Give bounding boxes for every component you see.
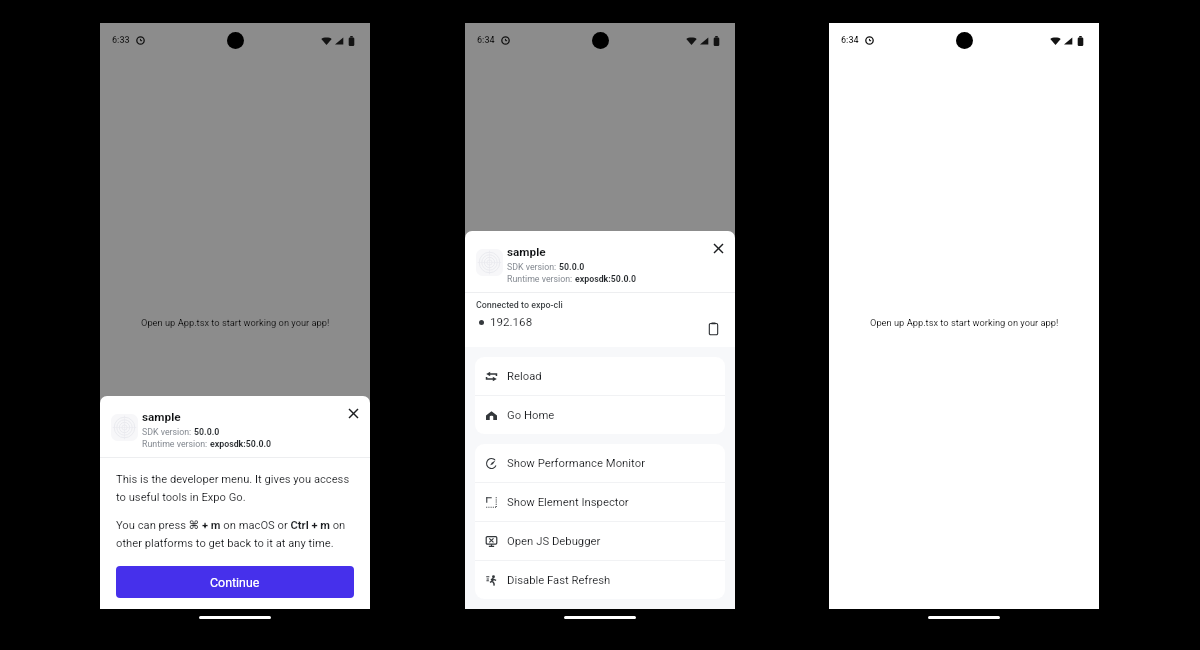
staticText: Show Performance Monitor bbox=[507, 457, 645, 470]
staticText: Runtime version: bbox=[507, 274, 575, 284]
staticText: Open up App.tsx to start working on your… bbox=[870, 317, 1059, 328]
button[interactable]: Disable Fast Refresh bbox=[475, 561, 725, 599]
staticText: sample bbox=[142, 410, 181, 424]
staticText: 192.168 bbox=[490, 315, 533, 329]
button[interactable]: Show Element Inspector bbox=[475, 483, 725, 521]
staticText: Runtime version: bbox=[142, 439, 210, 449]
staticText: 6:34 bbox=[841, 35, 859, 46]
button[interactable]: Continue bbox=[116, 566, 354, 598]
button[interactable]: Show Performance Monitor bbox=[475, 444, 725, 482]
button[interactable]: Close bbox=[344, 404, 362, 422]
staticText: 50.0.0 bbox=[559, 262, 585, 272]
staticText: You can press ⌘ + m on macOS or Ctrl + m… bbox=[116, 519, 351, 550]
button[interactable]: Reload bbox=[475, 357, 725, 395]
button[interactable]: Copy address bbox=[704, 319, 722, 337]
staticText: sample bbox=[507, 245, 546, 259]
staticText: Connected to expo-cli bbox=[476, 300, 563, 310]
staticText: 6:34 bbox=[477, 35, 495, 46]
staticText: Open JS Debugger bbox=[507, 535, 601, 548]
staticText: Show Element Inspector bbox=[507, 496, 629, 509]
staticText: 50.0.0 bbox=[194, 427, 220, 437]
button[interactable]: Open JS Debugger bbox=[475, 522, 725, 560]
staticText: This is the developer menu. It gives you… bbox=[116, 473, 351, 504]
staticText: Disable Fast Refresh bbox=[507, 574, 611, 587]
staticText: 6:33 bbox=[112, 35, 130, 46]
staticText: SDK version: bbox=[142, 427, 194, 437]
staticText: Reload bbox=[507, 370, 542, 383]
staticText: SDK version: bbox=[507, 262, 559, 272]
staticText: Continue bbox=[210, 575, 260, 590]
staticText: exposdk:50.0.0 bbox=[575, 274, 637, 284]
button[interactable]: Go Home bbox=[475, 396, 725, 434]
staticText: exposdk:50.0.0 bbox=[210, 439, 272, 449]
button[interactable]: Close bbox=[709, 239, 727, 257]
staticText: Open up App.tsx to start working on your… bbox=[141, 317, 330, 328]
staticText: Go Home bbox=[507, 409, 555, 422]
